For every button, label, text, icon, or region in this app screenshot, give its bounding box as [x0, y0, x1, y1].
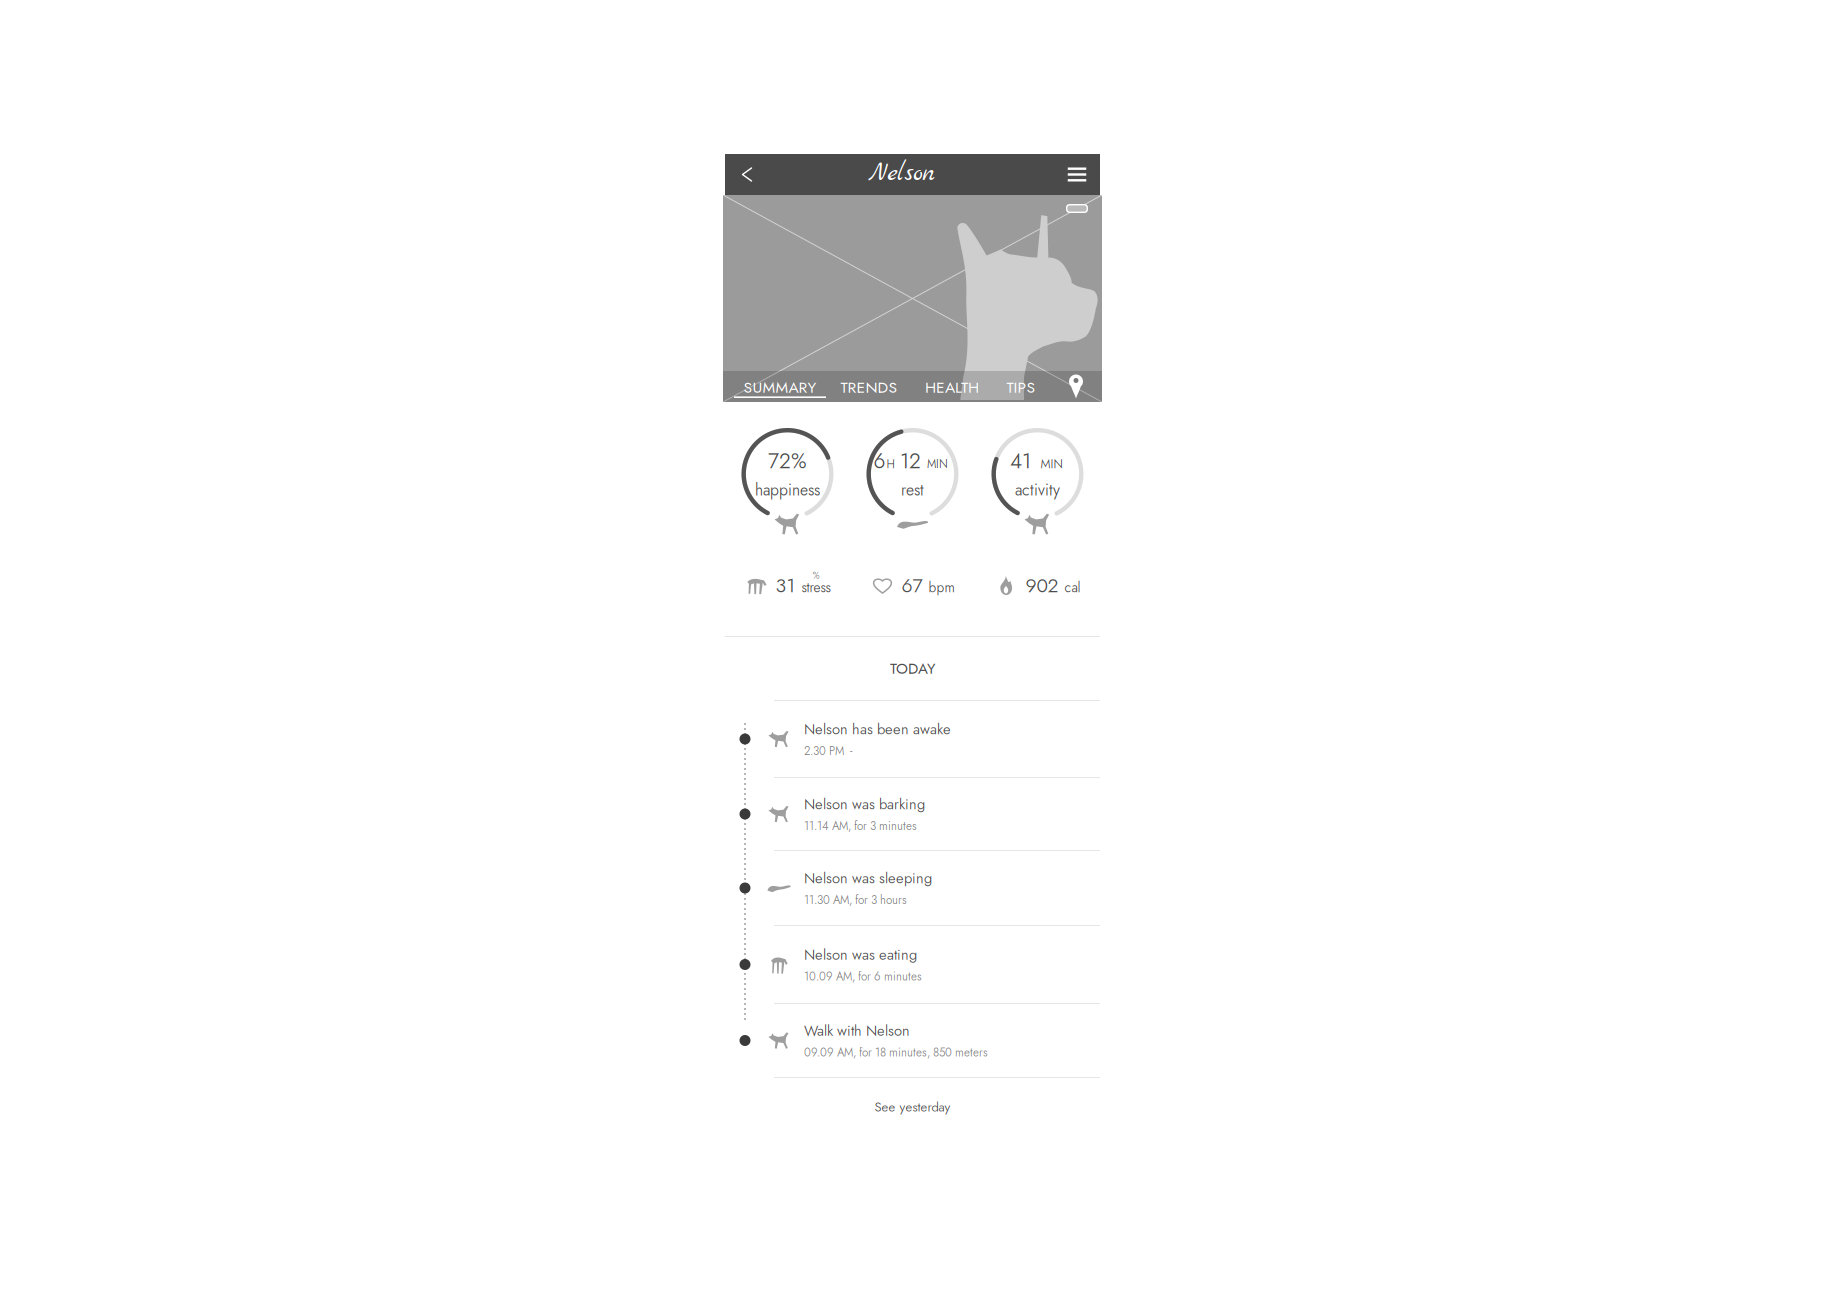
staticText: rest [901, 479, 924, 501]
staticText: MIN [1040, 455, 1062, 473]
button[interactable]: HEALTH [912, 371, 992, 402]
staticText: SUMMARY [743, 376, 816, 399]
staticText: 31 [775, 571, 795, 599]
staticText: Nelson was barking [804, 794, 925, 815]
staticText: 2.30 PM - [804, 743, 852, 759]
staticText: happiness [755, 479, 820, 501]
button[interactable]: Nelson was sleeping [725, 851, 1100, 925]
staticText: activity [1015, 479, 1060, 501]
staticText: TRENDS [840, 376, 897, 399]
button[interactable]: See yesterday [725, 1078, 1100, 1136]
staticText: Nelson [868, 157, 934, 190]
staticText: 11.14 AM, for 3 minutes [804, 818, 917, 834]
staticText: Nelson was sleeping [804, 868, 932, 889]
button[interactable]: Walk with Nelson [725, 1004, 1100, 1077]
staticText: 902 [1025, 571, 1058, 599]
staticText: Nelson was eating [804, 944, 917, 965]
staticText: 10.09 AM, for 6 minutes [804, 968, 922, 985]
button[interactable]: Nelson was eating [725, 926, 1100, 1003]
staticText: Nelson has been awake [804, 719, 951, 740]
staticText: 72% [768, 446, 807, 476]
staticText: See yesterday [874, 1098, 950, 1116]
button[interactable]: Location [1050, 371, 1102, 402]
button[interactable]: Nelson was barking [725, 778, 1100, 850]
button[interactable]: TIPS [992, 371, 1050, 402]
staticText: 6 [873, 446, 885, 476]
staticText: Walk with Nelson [804, 1020, 910, 1041]
staticText: TIPS [1006, 376, 1035, 399]
staticText: 67 [901, 571, 922, 599]
staticText: cal [1064, 578, 1080, 597]
button[interactable]: SUMMARY [734, 371, 826, 402]
button[interactable]: Back [725, 154, 769, 195]
staticText: bpm [928, 578, 954, 597]
button[interactable]: Menu [1054, 154, 1100, 195]
staticText: stress [801, 578, 830, 597]
staticText: 41 [1010, 446, 1031, 476]
staticText: 11.30 AM, for 3 hours [804, 892, 907, 908]
staticText: MIN [927, 456, 948, 472]
staticText: 09.09 AM, for 18 minutes, 850 meters [804, 1044, 988, 1061]
button[interactable]: Nelson has been awake [725, 701, 1100, 777]
staticText: H [886, 455, 894, 473]
staticText: % [812, 569, 819, 582]
staticText: 12 [900, 446, 921, 476]
button[interactable]: TRENDS [826, 371, 912, 402]
staticText: HEALTH [925, 376, 979, 399]
staticText: TODAY [890, 658, 935, 679]
